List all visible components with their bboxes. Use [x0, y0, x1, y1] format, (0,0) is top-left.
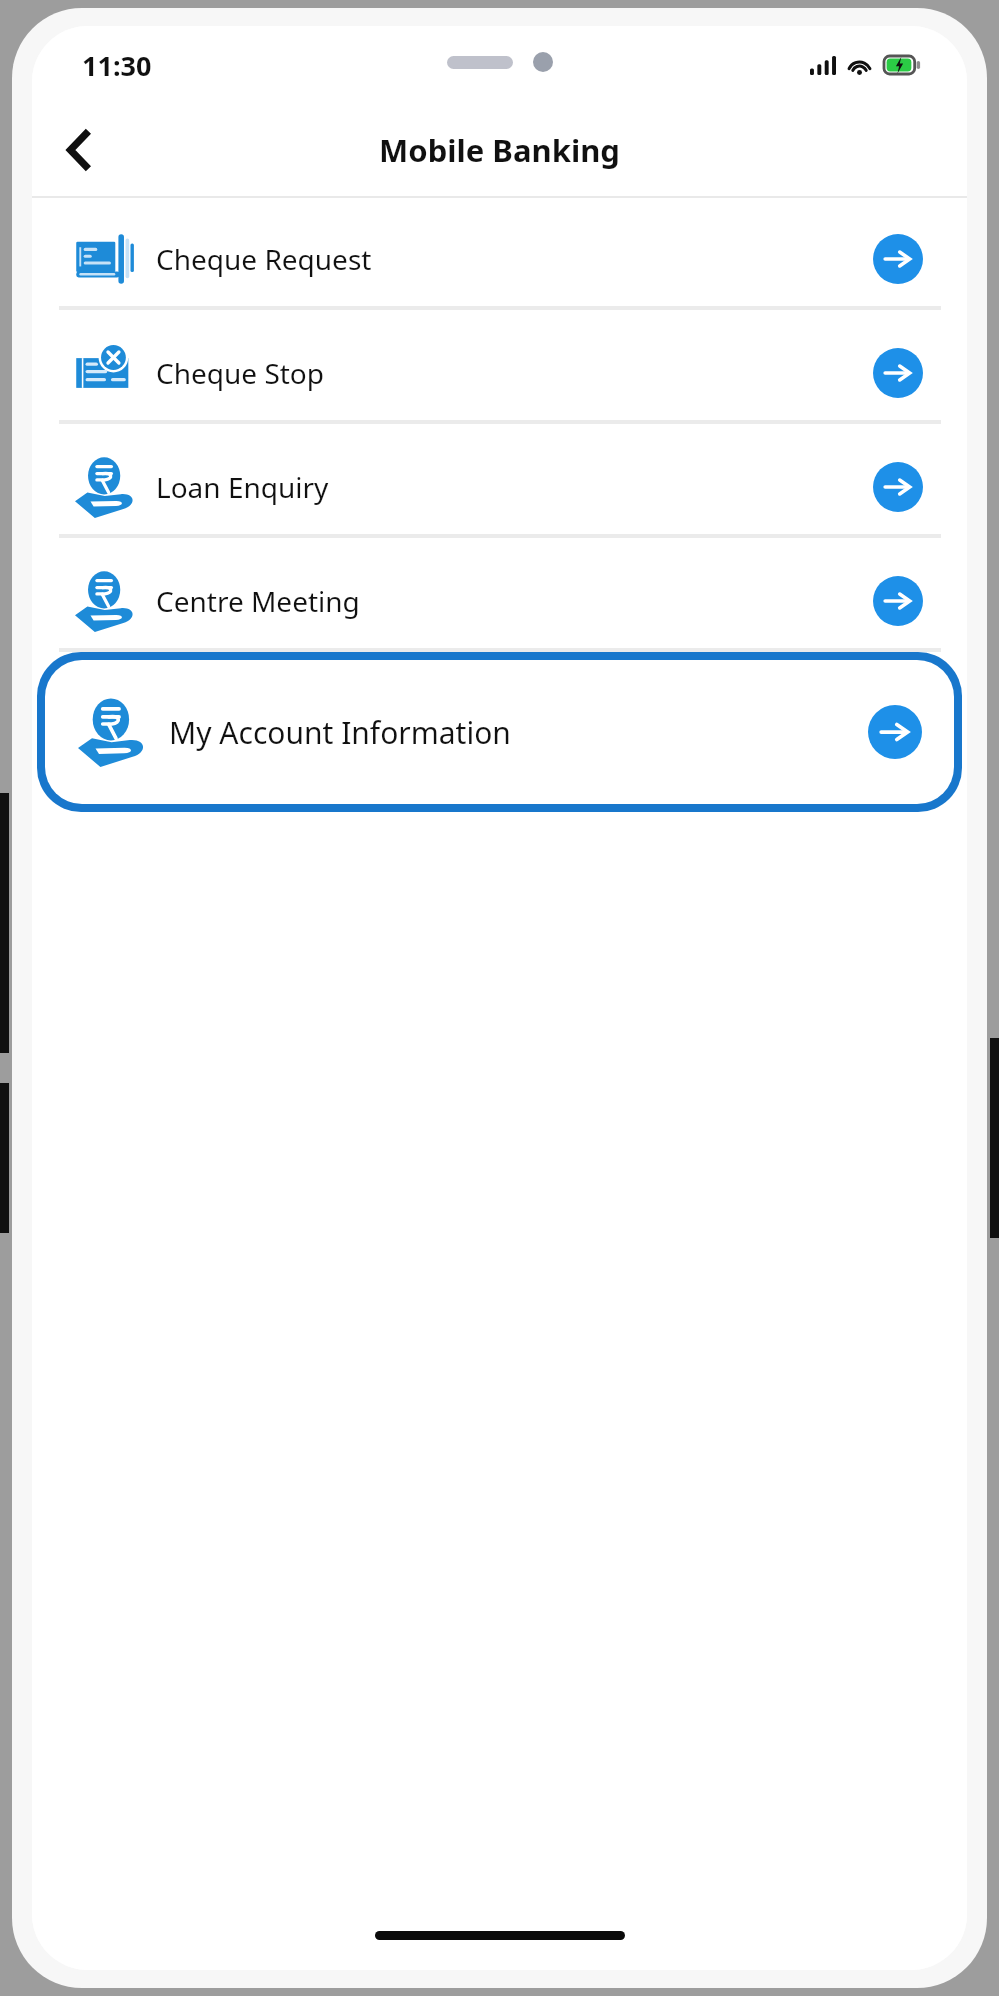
button[interactable]: Centre Meeting	[52, 550, 947, 652]
staticText: Cheque Request	[156, 240, 873, 278]
button[interactable]: Open	[868, 705, 922, 759]
staticText: Cheque Stop	[156, 354, 873, 392]
button[interactable]: My Account Information	[45, 660, 954, 804]
button[interactable]: Open	[873, 462, 923, 512]
button[interactable]: Back	[50, 120, 110, 180]
button[interactable]: Open	[873, 234, 923, 284]
staticText: 11:30	[82, 47, 152, 84]
button[interactable]: Cheque Stop	[52, 322, 947, 424]
button[interactable]: Open	[873, 348, 923, 398]
button[interactable]: Loan Enquiry	[52, 436, 947, 538]
staticText: Centre Meeting	[156, 582, 873, 620]
staticText: Mobile Banking	[379, 129, 620, 171]
button[interactable]: Open	[873, 576, 923, 626]
button[interactable]: Cheque Request	[52, 208, 947, 310]
staticText: Loan Enquiry	[156, 468, 873, 506]
staticText: My Account Information	[169, 712, 868, 753]
